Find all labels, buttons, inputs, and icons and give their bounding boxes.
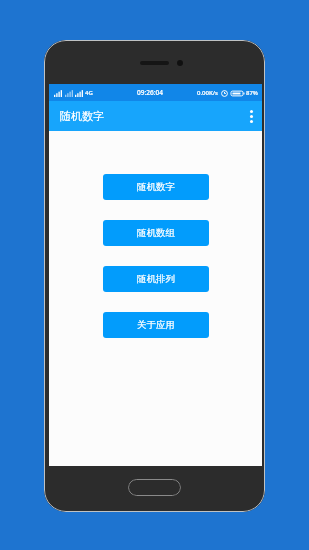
staticText: 09:26:04 <box>137 88 163 97</box>
button[interactable]: More options <box>240 101 262 131</box>
button[interactable]: 随机数组 <box>103 220 209 246</box>
staticText: 随机数字 <box>60 109 104 123</box>
staticText: 随机数组 <box>137 227 175 239</box>
staticText: 随机排列 <box>137 273 175 285</box>
staticText: 关于应用 <box>137 319 175 331</box>
button[interactable]: 关于应用 <box>103 312 209 338</box>
staticText: 87% <box>246 89 258 97</box>
button[interactable]: 随机数字 <box>103 174 209 200</box>
staticText: 0.00K/s <box>197 89 218 97</box>
staticText: 随机数字 <box>137 181 175 193</box>
button[interactable]: Home <box>128 479 181 496</box>
button[interactable]: 随机排列 <box>103 266 209 292</box>
staticText: 4G <box>85 89 93 97</box>
